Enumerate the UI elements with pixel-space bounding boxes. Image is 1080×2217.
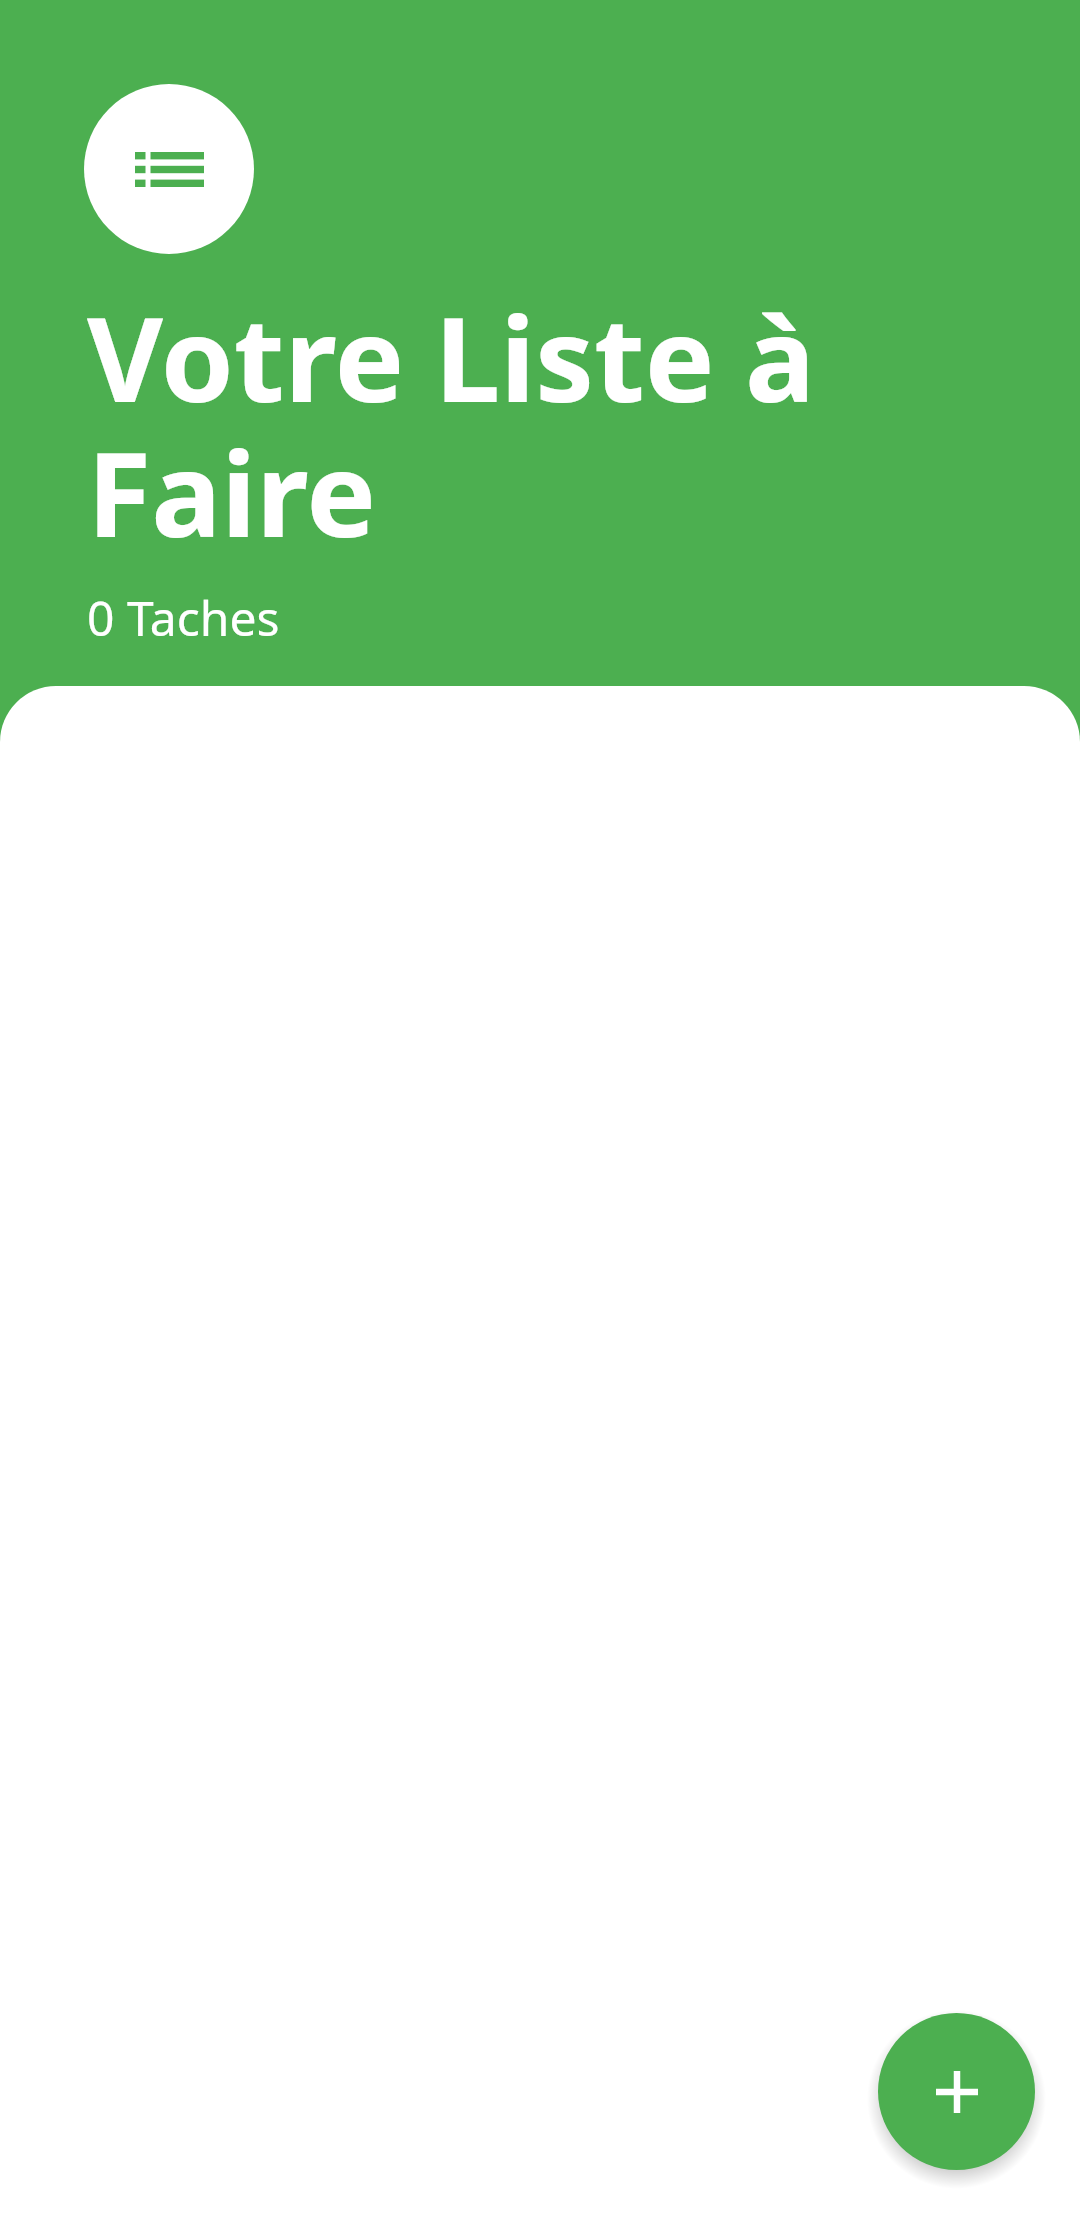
staticText: 0 Taches — [87, 585, 280, 650]
button[interactable]: Add task — [878, 2013, 1035, 2170]
button[interactable]: Open list menu — [84, 84, 254, 254]
staticText: Votre Liste à Faire — [87, 277, 816, 571]
